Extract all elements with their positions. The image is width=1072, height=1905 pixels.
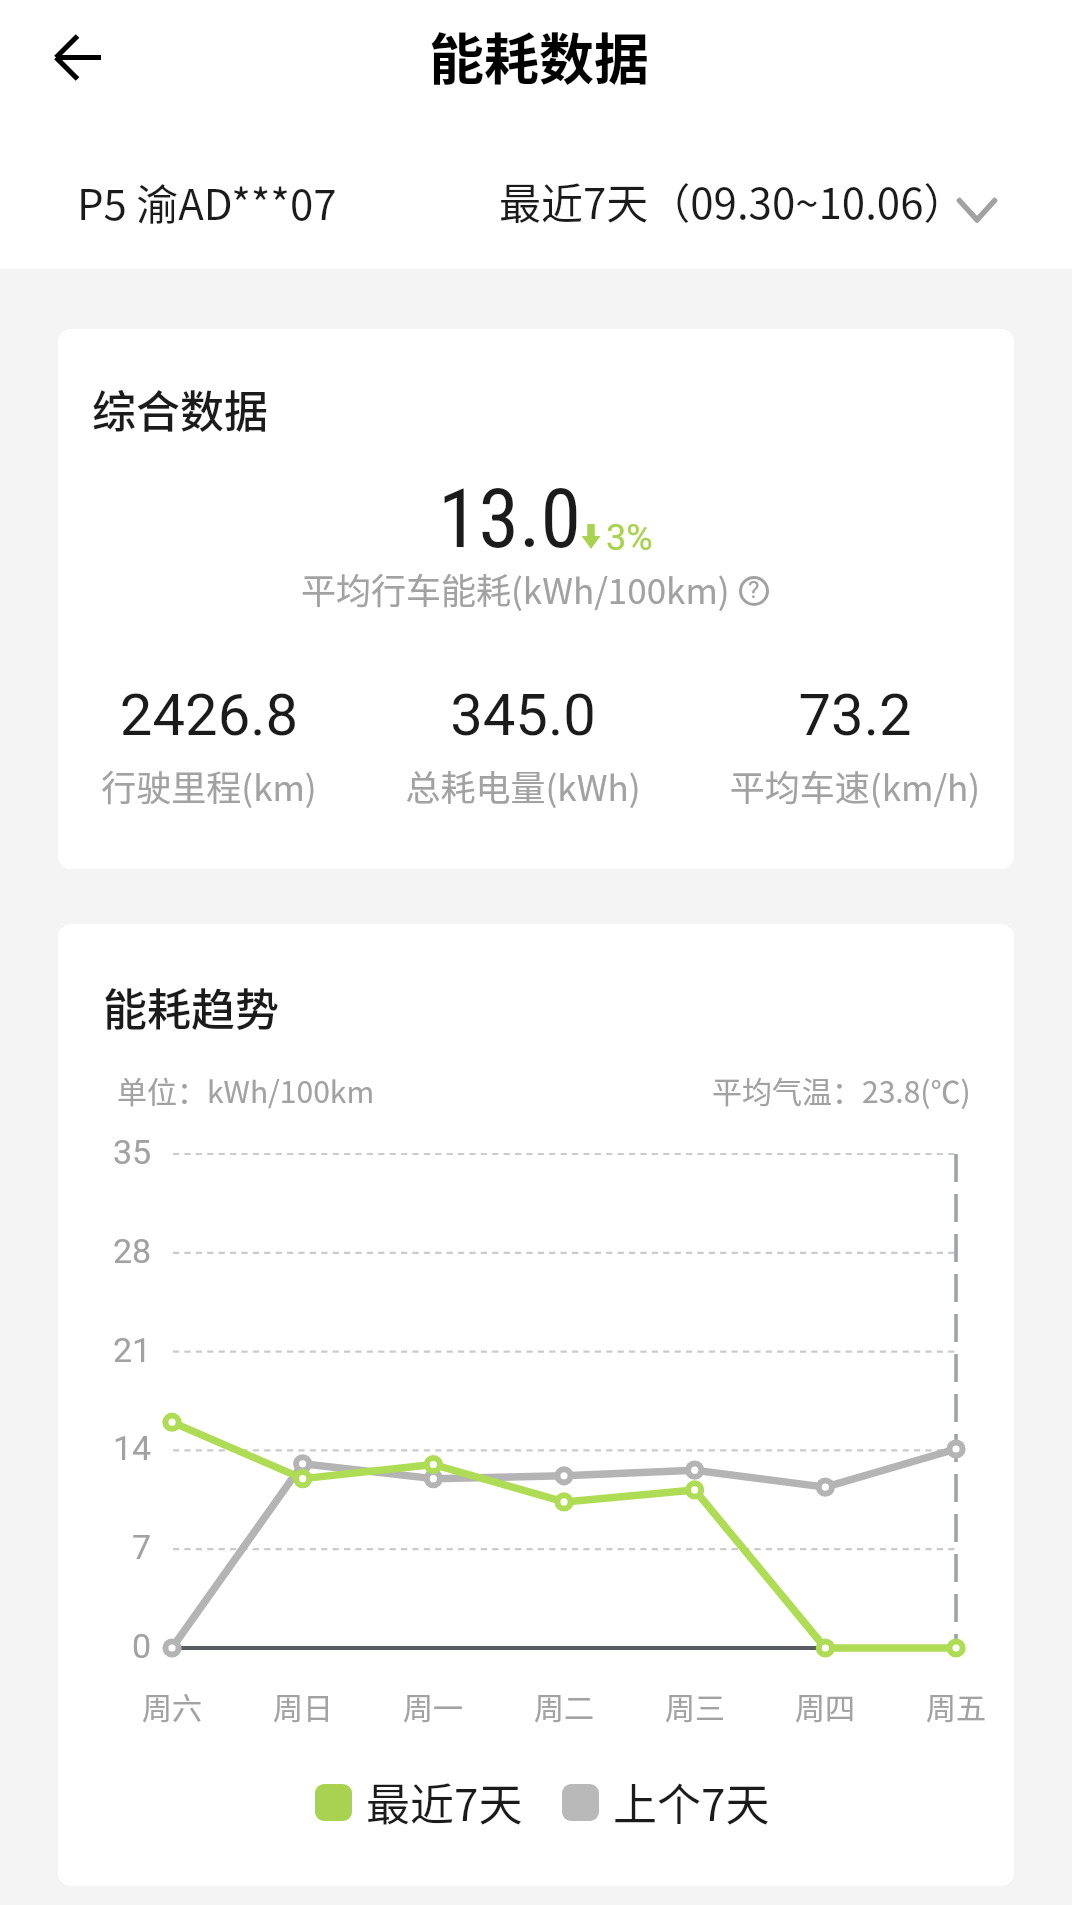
staticText: 345.0 [373, 681, 673, 749]
staticText: 行驶里程(km) [59, 760, 359, 811]
staticText: 周二 [534, 1684, 594, 1727]
staticText: 0 [132, 1626, 152, 1666]
staticText: 周日 [273, 1684, 333, 1727]
staticText: 2426.8 [59, 681, 359, 749]
staticText: 13.0 [438, 471, 582, 567]
staticText: 周三 [665, 1684, 725, 1727]
staticText: 28 [113, 1231, 152, 1271]
staticText: 总耗电量(kWh) [373, 760, 673, 811]
staticText: 周六 [142, 1684, 202, 1727]
staticText: 14 [113, 1428, 152, 1468]
staticText: 35 [113, 1132, 152, 1172]
staticText: 周一 [403, 1684, 463, 1727]
button[interactable]: Help [736, 573, 772, 609]
staticText: 平均气温：23.8(℃) [712, 1068, 971, 1111]
staticText: 综合数据 [92, 377, 268, 441]
staticText: 平均行车能耗(kWh/100km) [301, 563, 730, 614]
staticText: 73.2 [705, 681, 1005, 749]
staticText: 周五 [926, 1684, 986, 1727]
staticText: P5 渝AD***07 [77, 171, 337, 232]
button[interactable]: Back [30, 10, 124, 104]
staticText: 最近7天 [366, 1770, 523, 1834]
staticText: 周四 [795, 1684, 855, 1727]
staticText: 3% [606, 517, 653, 559]
staticText: 能耗趋势 [103, 975, 279, 1039]
staticText: 21 [113, 1330, 152, 1370]
button[interactable]: 最近7天（09.30~10.06） [499, 163, 1006, 231]
staticText: 单位：kWh/100km [117, 1068, 375, 1111]
staticText: 最近7天（09.30~10.06） [499, 170, 966, 231]
staticText: 7 [132, 1527, 152, 1567]
staticText: 上个7天 [613, 1770, 770, 1834]
staticText: 平均车速(km/h) [705, 760, 1005, 811]
staticText: ? [748, 576, 760, 604]
staticText: 能耗数据 [429, 15, 650, 95]
